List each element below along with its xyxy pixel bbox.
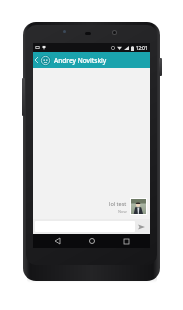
button[interactable]: Send (135, 220, 148, 233)
staticText: 12:01 (136, 45, 148, 51)
button[interactable]: Home (82, 234, 102, 248)
button[interactable]: Navigate up (33, 52, 40, 68)
staticText: Andrey Novitskiy (54, 56, 107, 65)
button[interactable]: Contact avatar (40, 55, 51, 66)
staticText: lol test (109, 200, 127, 207)
button[interactable]: Recent apps (116, 234, 136, 248)
staticText: Now (118, 209, 127, 214)
button[interactable]: Back (47, 234, 67, 248)
